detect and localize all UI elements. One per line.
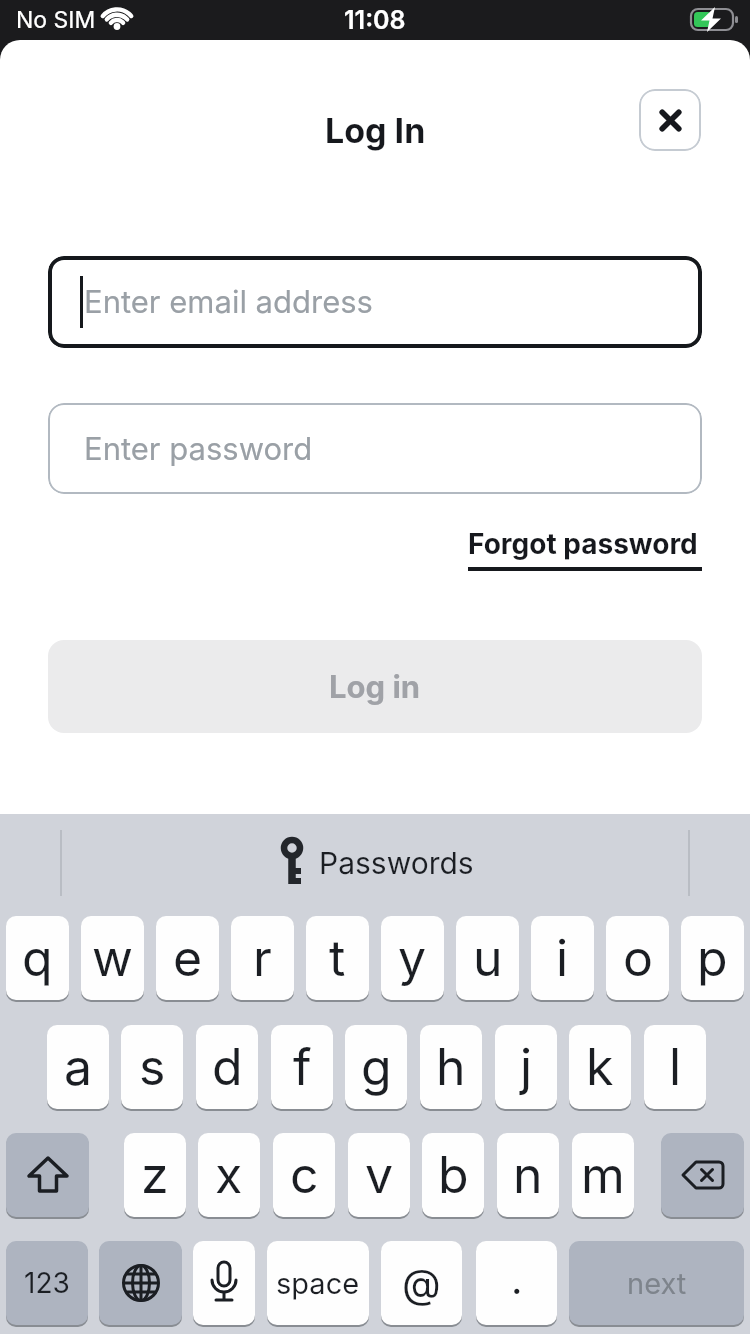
staticText: space (276, 1266, 360, 1301)
button[interactable]: @ (381, 1241, 462, 1325)
button[interactable]: y (381, 916, 444, 1000)
button[interactable]: g (345, 1025, 407, 1109)
button[interactable]: d (196, 1025, 258, 1109)
staticText: y (398, 928, 427, 988)
button[interactable]: u (456, 916, 519, 1000)
staticText: @ (402, 1259, 441, 1307)
staticText: s (139, 1037, 166, 1097)
staticText: Enter email address (84, 283, 373, 321)
button[interactable]: p (681, 916, 744, 1000)
button[interactable]: c (273, 1133, 335, 1217)
button[interactable]: i (531, 916, 594, 1000)
button[interactable] (661, 1133, 744, 1217)
button[interactable]: Forgot password (468, 527, 702, 561)
button[interactable]: r (231, 916, 294, 1000)
staticText: v (365, 1145, 394, 1205)
button[interactable]: next (569, 1241, 744, 1325)
staticText: x (215, 1145, 243, 1205)
staticText: next (627, 1266, 687, 1301)
button[interactable]: a (47, 1025, 109, 1109)
button[interactable]: f (271, 1025, 333, 1109)
button[interactable]: m (572, 1133, 634, 1217)
staticText: Enter password (84, 430, 313, 468)
button[interactable]: h (420, 1025, 482, 1109)
button[interactable]: Enter email address (48, 256, 702, 348)
button[interactable]: l (644, 1025, 706, 1109)
staticText: Log in (329, 668, 421, 706)
button[interactable]: 123 (6, 1241, 88, 1325)
staticText: No SIM (16, 6, 96, 34)
staticText: q (22, 928, 53, 988)
staticText: 123 (24, 1266, 70, 1300)
button[interactable] (193, 1241, 255, 1325)
staticText: k (586, 1037, 614, 1097)
staticText: e (173, 928, 203, 988)
button[interactable]: o (606, 916, 669, 1000)
staticText: z (141, 1145, 169, 1205)
button[interactable]: k (569, 1025, 631, 1109)
button[interactable]: z (124, 1133, 186, 1217)
staticText: j (520, 1037, 533, 1097)
staticText: c (290, 1145, 319, 1205)
button[interactable]: w (81, 916, 144, 1000)
staticText: 11:08 (344, 5, 406, 35)
staticText: w (92, 928, 133, 988)
staticText: n (513, 1145, 543, 1205)
button[interactable] (99, 1241, 182, 1325)
staticText: b (438, 1145, 469, 1205)
staticText: Forgot password (468, 527, 698, 561)
button[interactable]: Passwords (0, 814, 750, 912)
staticText: . (511, 1255, 523, 1303)
button[interactable]: s (121, 1025, 183, 1109)
staticText: f (293, 1037, 312, 1097)
staticText: m (581, 1145, 625, 1205)
button[interactable]: t (306, 916, 369, 1000)
button[interactable]: n (497, 1133, 559, 1217)
button[interactable]: space (267, 1241, 369, 1325)
button[interactable]: v (348, 1133, 410, 1217)
staticText: t (329, 928, 346, 988)
button[interactable]: j (495, 1025, 557, 1109)
staticText: u (473, 928, 503, 988)
button[interactable]: . (476, 1241, 557, 1325)
staticText: r (253, 928, 272, 988)
staticText: g (361, 1037, 392, 1097)
button[interactable]: Log in (48, 640, 702, 733)
button[interactable]: x (198, 1133, 260, 1217)
button[interactable]: q (6, 916, 69, 1000)
staticText: l (669, 1037, 682, 1097)
staticText: h (436, 1037, 466, 1097)
button[interactable]: b (422, 1133, 484, 1217)
button[interactable]: Enter password (48, 403, 702, 494)
button[interactable] (6, 1133, 89, 1217)
button[interactable]: e (156, 916, 219, 1000)
staticText: a (64, 1037, 93, 1097)
staticText: o (623, 928, 653, 988)
staticText: Log In (325, 110, 426, 151)
staticText: Passwords (319, 845, 474, 881)
button[interactable] (639, 89, 701, 151)
staticText: d (212, 1037, 243, 1097)
staticText: i (556, 928, 569, 988)
staticText: p (697, 928, 728, 988)
